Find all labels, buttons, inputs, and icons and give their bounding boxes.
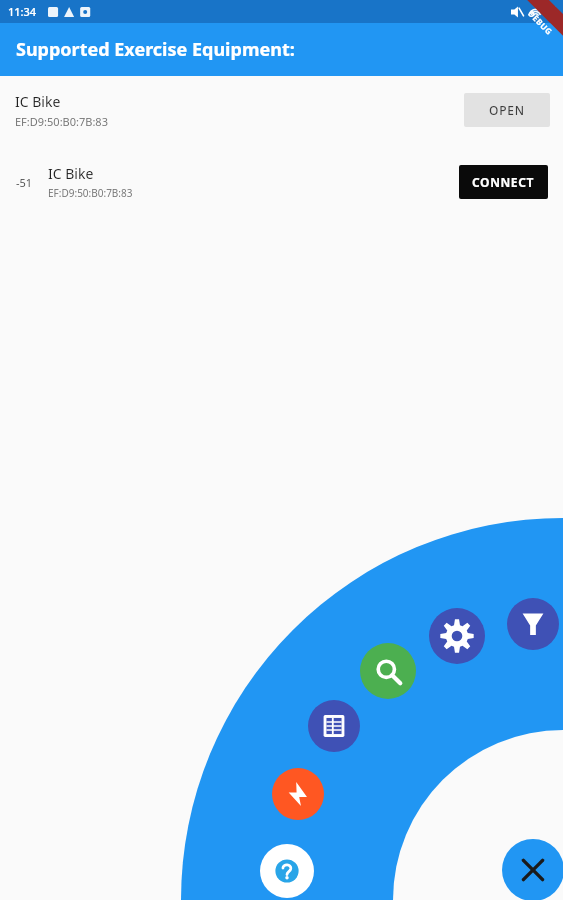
staticText: IC Bike [15, 92, 61, 111]
staticText: EF:D9:50:B0:7B:83 [15, 114, 108, 129]
staticText: -51 [16, 175, 33, 190]
button[interactable]: List [308, 700, 360, 752]
button[interactable]: IC Bike [0, 84, 563, 136]
button[interactable]: Settings [429, 608, 485, 664]
button[interactable]: -51 [0, 156, 563, 208]
staticText: OPEN [489, 102, 525, 118]
staticText: IC Bike [48, 164, 94, 183]
staticText: CONNECT [472, 174, 535, 190]
staticText: DEBUG [526, 8, 555, 37]
staticText: 11:34 [8, 4, 37, 19]
button[interactable]: Close menu [502, 839, 563, 900]
staticText: Supported Exercise Equipment: [16, 37, 295, 62]
button[interactable]: OPEN [464, 93, 550, 127]
button[interactable]: Activity [272, 768, 324, 820]
staticText: EF:D9:50:B0:7B:83 [48, 186, 133, 200]
button[interactable]: CONNECT [459, 165, 548, 199]
button[interactable]: Help [260, 844, 314, 898]
button[interactable]: Search [360, 643, 416, 699]
button[interactable]: Filter [507, 598, 559, 650]
